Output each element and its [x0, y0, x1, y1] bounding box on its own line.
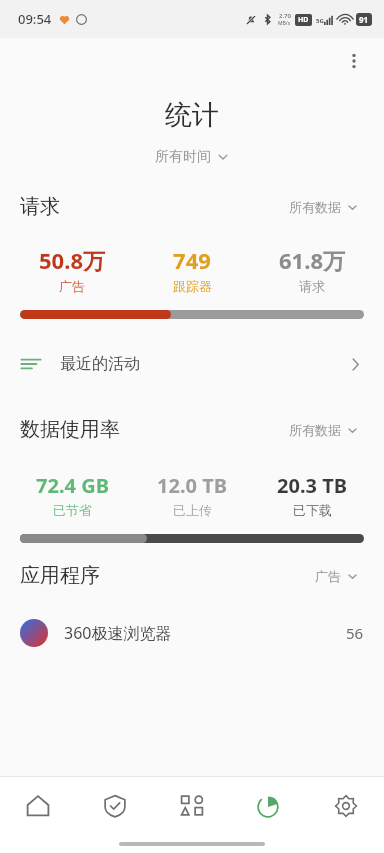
- staticText: 50.8万: [39, 245, 105, 275]
- button[interactable]: More options: [332, 39, 376, 83]
- staticText: 所有时间: [155, 148, 211, 166]
- staticText: 12.0 TB: [157, 472, 227, 499]
- staticText: 最近的活动: [60, 354, 140, 374]
- staticText: 09:54: [18, 10, 52, 28]
- button[interactable]: Settings: [307, 777, 384, 835]
- staticText: 72.4 GB: [36, 472, 109, 499]
- button[interactable]: Home: [0, 777, 76, 835]
- button[interactable]: Apps: [153, 777, 230, 835]
- staticText: 91: [359, 14, 369, 25]
- staticText: 5G: [316, 17, 324, 25]
- button[interactable]: 360极速浏览器: [0, 610, 384, 656]
- button[interactable]: 所有数据: [283, 418, 364, 442]
- button[interactable]: Statistics: [230, 777, 307, 835]
- staticText: 所有数据: [289, 422, 341, 438]
- staticText: 56: [346, 623, 364, 643]
- button[interactable]: Protection: [76, 777, 153, 835]
- staticText: 广告: [315, 568, 341, 584]
- staticText: MB/s: [278, 20, 291, 27]
- button[interactable]: 所有时间: [145, 144, 239, 170]
- button[interactable]: 所有数据: [283, 195, 364, 219]
- staticText: 2.70: [279, 12, 291, 20]
- staticText: 20.3 TB: [277, 472, 347, 499]
- staticText: 已下载: [293, 502, 332, 518]
- staticText: 749: [173, 245, 211, 275]
- staticText: 跟踪器: [173, 278, 212, 294]
- staticText: 广告: [59, 278, 85, 294]
- staticText: 应用程序: [20, 563, 100, 588]
- staticText: 所有数据: [289, 199, 341, 215]
- staticText: 已节省: [53, 502, 92, 518]
- staticText: 已上传: [173, 502, 212, 518]
- staticText: 请求: [299, 278, 325, 294]
- staticText: 请求: [20, 194, 60, 219]
- staticText: 61.8万: [279, 245, 345, 275]
- button[interactable]: 最近的活动: [0, 337, 384, 391]
- staticText: 统计: [165, 98, 219, 132]
- staticText: HD: [298, 15, 309, 25]
- button[interactable]: 广告: [309, 564, 364, 588]
- staticText: 360极速浏览器: [64, 622, 172, 644]
- staticText: 数据使用率: [20, 417, 120, 442]
